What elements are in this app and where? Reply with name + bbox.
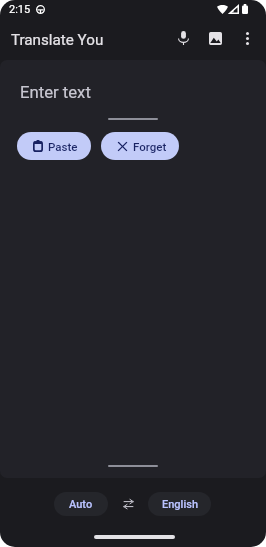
staticText: Enter text [20,83,91,103]
button[interactable]: Forget [101,132,179,160]
button[interactable]: Swap languages [116,492,140,516]
button[interactable]: English [148,492,211,516]
staticText: Auto [69,498,93,511]
staticText: Paste [48,140,78,153]
button[interactable]: Auto [54,492,108,516]
staticText: Forget [133,140,167,153]
button[interactable]: Image translate [199,22,231,54]
staticText: 2:15 [9,3,31,16]
button[interactable]: More options [231,22,263,54]
button[interactable]: Paste [17,132,91,160]
staticText: English [162,498,198,511]
staticText: Translate You [11,31,104,49]
button[interactable]: Voice input [167,22,199,54]
